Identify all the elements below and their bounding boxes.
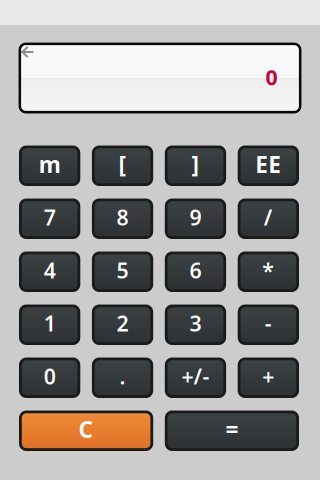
staticText: / bbox=[264, 203, 273, 231]
button[interactable]: - bbox=[238, 304, 299, 345]
button[interactable]: 5 bbox=[92, 251, 153, 292]
button[interactable]: 8 bbox=[92, 198, 153, 239]
staticText: ] bbox=[191, 149, 199, 179]
staticText: 1 bbox=[44, 309, 56, 337]
staticText: 0 bbox=[265, 63, 277, 91]
staticText: + bbox=[262, 362, 274, 390]
button[interactable]: 9 bbox=[165, 198, 226, 239]
staticText: EE bbox=[255, 149, 281, 179]
staticText: * bbox=[262, 256, 274, 284]
staticText: 4 bbox=[44, 256, 56, 284]
button[interactable]: / bbox=[238, 198, 299, 239]
button[interactable]: 1 bbox=[19, 304, 80, 345]
button[interactable]: 4 bbox=[19, 251, 80, 292]
button[interactable]: 7 bbox=[19, 198, 80, 239]
staticText: C bbox=[79, 414, 94, 444]
staticText: 3 bbox=[189, 309, 201, 337]
staticText: 0 bbox=[44, 362, 56, 390]
staticText: [ bbox=[118, 149, 126, 179]
button[interactable]: 0 bbox=[19, 357, 80, 398]
button[interactable]: 6 bbox=[165, 251, 226, 292]
staticText: . bbox=[119, 362, 125, 390]
staticText: +/- bbox=[181, 362, 209, 390]
staticText: 2 bbox=[116, 309, 128, 337]
button[interactable]: m bbox=[19, 145, 80, 186]
staticText: 6 bbox=[189, 256, 201, 284]
staticText: - bbox=[265, 309, 272, 337]
staticText: 9 bbox=[189, 203, 201, 231]
button[interactable]: [ bbox=[92, 145, 153, 186]
button[interactable]: + bbox=[238, 357, 299, 398]
button[interactable]: . bbox=[92, 357, 153, 398]
button[interactable]: 3 bbox=[165, 304, 226, 345]
staticText: m bbox=[39, 149, 61, 179]
staticText: = bbox=[225, 414, 238, 444]
button[interactable]: C bbox=[19, 410, 153, 451]
button[interactable]: * bbox=[238, 251, 299, 292]
button[interactable]: 2 bbox=[92, 304, 153, 345]
button[interactable]: = bbox=[165, 410, 299, 451]
staticText: 8 bbox=[116, 203, 128, 231]
staticText: 5 bbox=[116, 256, 128, 284]
staticText: 7 bbox=[44, 203, 56, 231]
button[interactable]: +/- bbox=[165, 357, 226, 398]
button[interactable]: EE bbox=[238, 145, 299, 186]
button[interactable]: ] bbox=[165, 145, 226, 186]
